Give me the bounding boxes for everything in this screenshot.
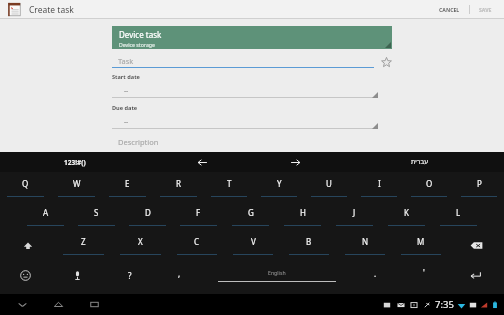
- button[interactable]: B: [281, 231, 337, 260]
- button[interactable]: R: [153, 173, 204, 202]
- button[interactable]: Voice input: [50, 261, 105, 290]
- button[interactable]: Shift: [0, 231, 55, 260]
- button[interactable]: V: [225, 231, 281, 260]
- staticText: E: [125, 178, 130, 189]
- button[interactable]: Recent apps: [82, 294, 106, 315]
- staticText: J: [353, 207, 356, 218]
- button[interactable]: Enter: [449, 261, 504, 290]
- staticText: Y: [277, 178, 282, 189]
- staticText: Due date: [112, 104, 138, 112]
- staticText: R: [176, 178, 181, 189]
- staticText: L: [456, 207, 461, 218]
- button[interactable]: SAVE: [475, 3, 496, 16]
- button[interactable]: CANCEL: [435, 3, 464, 16]
- button[interactable]: P: [454, 173, 504, 202]
- staticText: T: [227, 178, 232, 189]
- staticText: Q: [22, 178, 29, 189]
- staticText: N: [362, 236, 369, 247]
- staticText: CANCEL: [439, 6, 460, 13]
- button[interactable]: U: [304, 173, 354, 202]
- staticText: 7:35: [435, 298, 454, 311]
- button[interactable]: I: [354, 173, 404, 202]
- staticText: M: [417, 236, 425, 247]
- staticText: עברית: [411, 158, 429, 166]
- button[interactable]: W: [51, 173, 102, 202]
- staticText: F: [196, 207, 201, 218]
- staticText: Create task: [29, 4, 74, 16]
- button[interactable]: --: [112, 116, 392, 129]
- button[interactable]: Notification: [382, 300, 392, 310]
- button[interactable]: C: [169, 231, 225, 260]
- button[interactable]: Back: [10, 294, 34, 315]
- staticText: S: [94, 207, 99, 218]
- button[interactable]: ,: [155, 261, 203, 290]
- staticText: --: [124, 117, 129, 126]
- button[interactable]: Move cursor left: [150, 152, 255, 172]
- button[interactable]: G: [224, 202, 276, 231]
- button[interactable]: L: [432, 202, 484, 231]
- button[interactable]: K: [380, 202, 432, 231]
- button[interactable]: ': [399, 261, 449, 290]
- staticText: B: [306, 236, 312, 247]
- staticText: ?: [128, 270, 132, 281]
- staticText: 123!#(): [64, 158, 86, 167]
- button[interactable]: X: [112, 231, 169, 260]
- button[interactable]: English: [203, 261, 351, 290]
- staticText: W: [73, 178, 81, 189]
- staticText: Description: [118, 137, 159, 147]
- button[interactable]: A: [20, 202, 71, 231]
- staticText: H: [300, 207, 306, 218]
- staticText: Start date: [112, 73, 140, 81]
- button[interactable]: Backspace: [449, 231, 504, 260]
- button[interactable]: ?: [105, 261, 155, 290]
- button[interactable]: Y: [254, 173, 304, 202]
- button[interactable]: .: [351, 261, 399, 290]
- staticText: C: [194, 236, 200, 247]
- staticText: .: [374, 268, 377, 279]
- button[interactable]: T: [204, 173, 254, 202]
- button[interactable]: Z: [55, 231, 112, 260]
- staticText: P: [477, 178, 482, 189]
- staticText: G: [248, 207, 254, 218]
- button[interactable]: N: [337, 231, 393, 260]
- staticText: ': [423, 267, 425, 278]
- button[interactable]: Home: [46, 294, 70, 315]
- staticText: K: [404, 207, 409, 218]
- staticText: V: [251, 236, 256, 247]
- staticText: U: [326, 178, 332, 189]
- button[interactable]: H: [276, 202, 328, 231]
- button[interactable]: Star task: [380, 56, 392, 68]
- button[interactable]: Move cursor right: [255, 152, 335, 172]
- staticText: I: [378, 178, 381, 189]
- staticText: Task: [118, 56, 134, 66]
- button[interactable]: --: [112, 85, 392, 98]
- staticText: A: [43, 207, 49, 218]
- button[interactable]: D: [122, 202, 173, 231]
- button[interactable]: F: [173, 202, 224, 231]
- staticText: --: [124, 86, 129, 95]
- staticText: SAVE: [479, 6, 492, 13]
- button[interactable]: Device task: [112, 26, 392, 49]
- button[interactable]: E: [102, 173, 153, 202]
- button[interactable]: M: [393, 231, 449, 260]
- button[interactable]: S: [71, 202, 122, 231]
- staticText: D: [145, 207, 151, 218]
- button[interactable]: O: [404, 173, 454, 202]
- staticText: English: [268, 269, 286, 276]
- button[interactable]: J: [328, 202, 380, 231]
- staticText: O: [426, 178, 433, 189]
- button[interactable]: Emoji: [0, 261, 50, 290]
- staticText: ,: [178, 268, 181, 279]
- button[interactable]: עברית: [335, 152, 504, 172]
- button[interactable]: Q: [0, 173, 51, 202]
- button[interactable]: Task: [112, 55, 374, 68]
- button[interactable]: 123!#(): [0, 152, 150, 172]
- staticText: Z: [81, 236, 86, 247]
- staticText: Device storage: [119, 41, 155, 48]
- staticText: Device task: [119, 29, 162, 40]
- staticText: X: [138, 236, 143, 247]
